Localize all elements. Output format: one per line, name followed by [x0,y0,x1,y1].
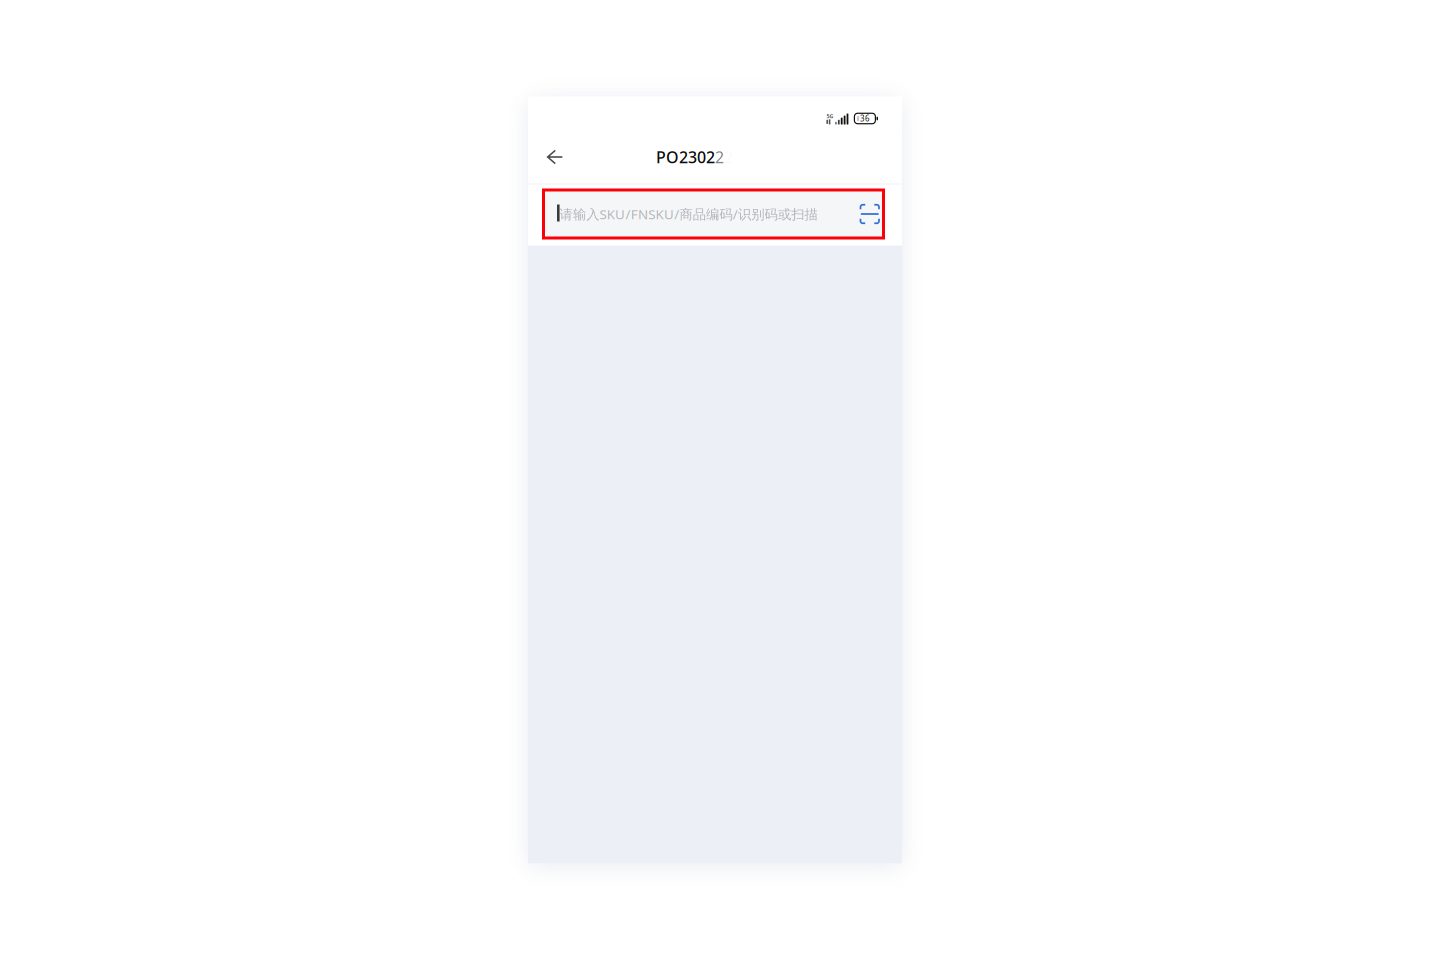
button[interactable]: Back [534,135,576,182]
staticText: 2 [715,146,724,168]
staticText: 请输入SKU/FNSKU/商品编码/识别码或扫描 [560,205,817,223]
button[interactable]: 请输入SKU/FNSKU/商品编码/识别码或扫描 [528,184,902,245]
staticText: 5G [826,112,833,120]
staticText: 36 [860,113,870,124]
staticText: PO2302 [656,146,715,168]
